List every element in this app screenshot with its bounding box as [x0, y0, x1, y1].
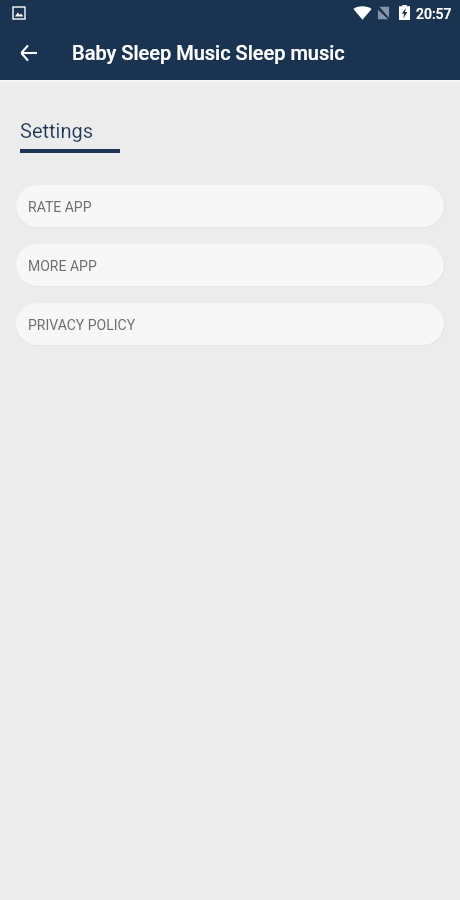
staticText: PRIVACY POLICY: [28, 317, 136, 333]
staticText: Settings: [20, 119, 94, 142]
staticText: Baby Sleep Music Sleep music: [72, 41, 345, 64]
button[interactable]: Settings: [20, 119, 120, 153]
button[interactable]: Back: [4, 28, 52, 76]
button[interactable]: PRIVACY POLICY: [16, 303, 444, 345]
staticText: MORE APP: [28, 258, 97, 274]
button[interactable]: RATE APP: [16, 185, 444, 227]
staticText: 20:57: [416, 6, 452, 22]
staticText: RATE APP: [28, 199, 92, 215]
button[interactable]: MORE APP: [16, 244, 444, 286]
